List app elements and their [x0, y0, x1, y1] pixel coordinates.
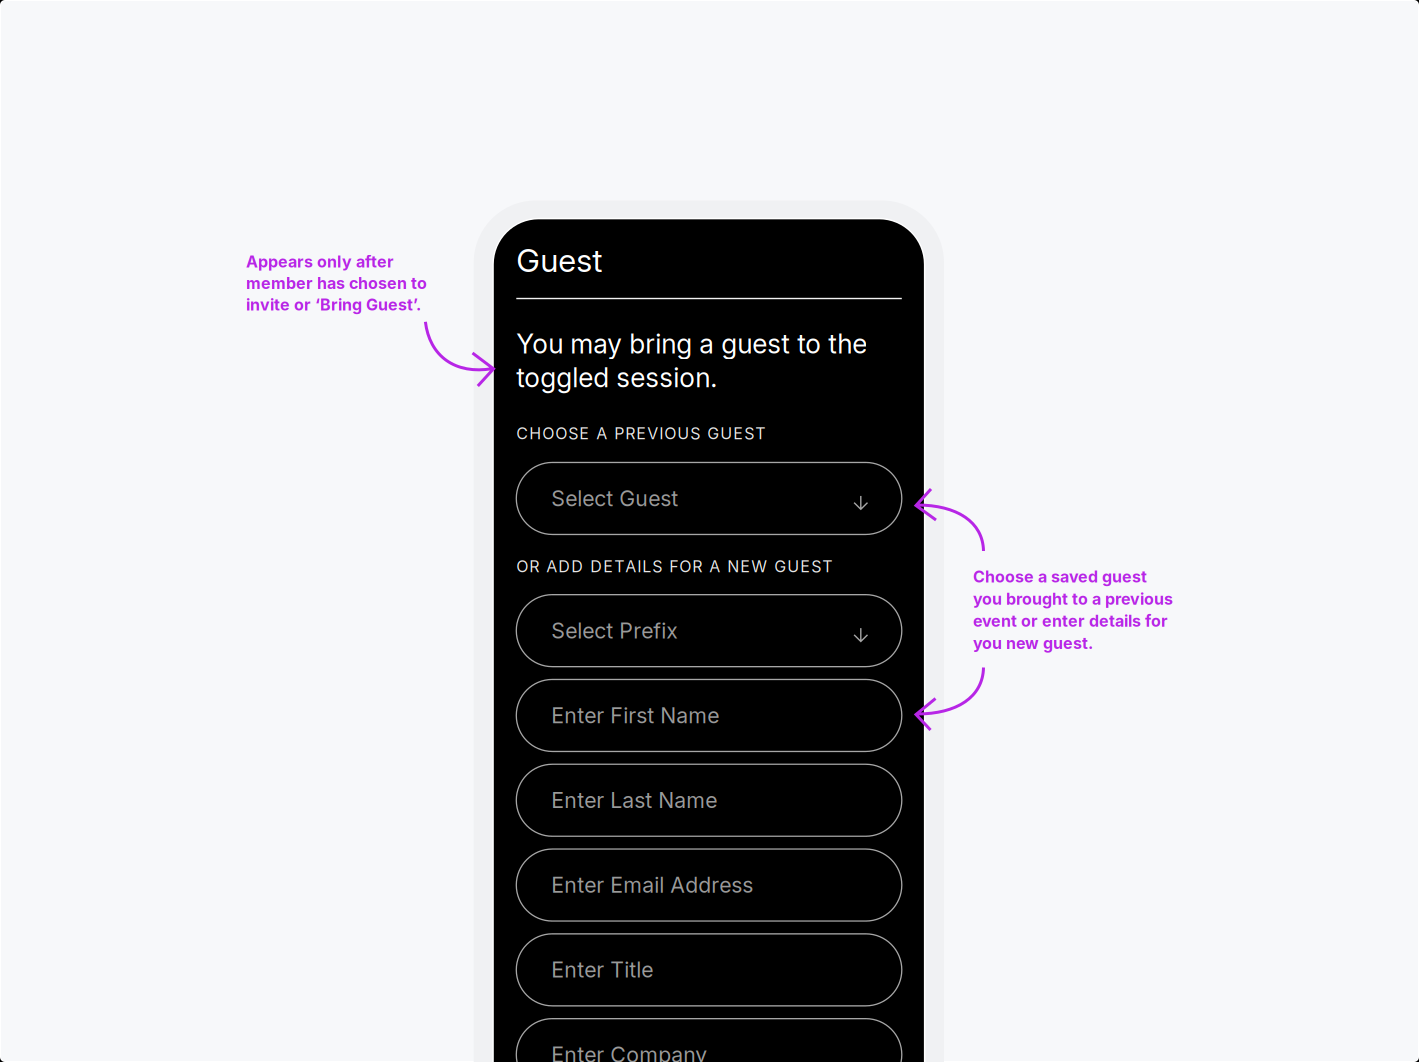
button[interactable]: Select Guest — [516, 462, 902, 534]
staticText: Enter First Name — [551, 702, 719, 728]
staticText: O R A D D D E T A I L S F O R A N E W G … — [516, 557, 832, 576]
button[interactable]: Select Prefix — [516, 595, 902, 667]
staticText: Select Prefix — [551, 618, 678, 643]
staticText: Appears only after member has chosen to … — [246, 252, 427, 314]
staticText: Select Guest — [551, 485, 678, 511]
button[interactable]: Enter Company — [516, 1019, 902, 1062]
staticText: Enter Last Name — [551, 787, 717, 813]
staticText: Enter Company — [551, 1042, 707, 1062]
button[interactable]: Enter Last Name — [516, 764, 902, 836]
staticText: Enter Title — [551, 957, 653, 983]
staticText: Guest — [516, 241, 602, 280]
staticText: C H O O S E A P R E V I O U S G U E S T — [516, 424, 765, 443]
button[interactable]: Enter Email Address — [516, 849, 902, 921]
staticText: You may bring a guest to the toggled ses… — [516, 328, 867, 394]
staticText: Choose a saved guest you brought to a pr… — [973, 567, 1173, 653]
button[interactable]: Enter First Name — [516, 679, 902, 751]
staticText: Enter Email Address — [551, 872, 753, 898]
button[interactable]: Enter Title — [516, 934, 902, 1006]
